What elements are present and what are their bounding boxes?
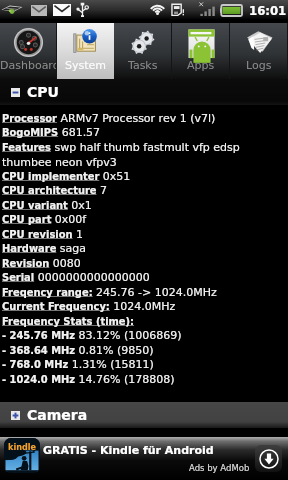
button[interactable]: kindle: [0, 437, 288, 480]
staticText: - 1024.0 MHz 14.76% (178808): [2, 371, 285, 386]
staticText: Freqency range: 245.76 -> 1024.0MHz: [2, 284, 285, 299]
staticText: BogoMIPS 681.57: [2, 124, 285, 139]
staticText: Serial 0000000000000000: [2, 269, 285, 284]
button[interactable]: Logs: [230, 23, 288, 79]
button[interactable]: Tasks: [114, 23, 172, 79]
staticText: Tasks: [128, 59, 158, 72]
staticText: Camera: [27, 407, 88, 423]
staticText: CPU revision 1: [2, 226, 285, 241]
staticText: Apps: [187, 59, 215, 72]
button[interactable]: Apps: [172, 23, 230, 79]
staticText: System: [65, 59, 107, 72]
staticText: kindle: [8, 442, 36, 452]
staticText: GRATIS - Kindle für Android: [43, 444, 214, 457]
staticText: 16:01: [249, 3, 287, 18]
staticText: CPU variant 0x1: [2, 197, 285, 212]
staticText: CPU implementer 0x51: [2, 168, 285, 183]
staticText: - 768.0 MHz 1.31% (15811): [2, 356, 285, 371]
staticText: CPU: [27, 84, 59, 100]
button[interactable]: System: [57, 23, 114, 79]
button[interactable]: Camera: [0, 402, 288, 428]
staticText: - 368.64 MHz 0.81% (9850): [2, 342, 285, 357]
staticText: Processor ARMv7 Processor rev 1 (v7l): [2, 110, 285, 125]
staticText: Dashboard: [0, 59, 57, 72]
staticText: Ads by AdMob: [189, 463, 250, 473]
button[interactable]: Dashboard: [0, 23, 57, 79]
button[interactable]: CPU: [0, 79, 288, 105]
staticText: Revision 0080: [2, 255, 285, 270]
staticText: Hardware saga: [2, 240, 285, 255]
staticText: Logs: [246, 59, 272, 72]
button[interactable]: Download: [255, 445, 282, 472]
staticText: Features swp half thumb fastmult vfp eds…: [2, 139, 285, 169]
staticText: CPU part 0x00f: [2, 211, 285, 226]
staticText: Current Frequency: 1024.0MHz: [2, 298, 285, 313]
staticText: Frequency Stats (time):: [2, 313, 285, 328]
staticText: CPU architecture 7: [2, 182, 285, 197]
staticText: - 245.76 MHz 83.12% (1006869): [2, 327, 285, 342]
